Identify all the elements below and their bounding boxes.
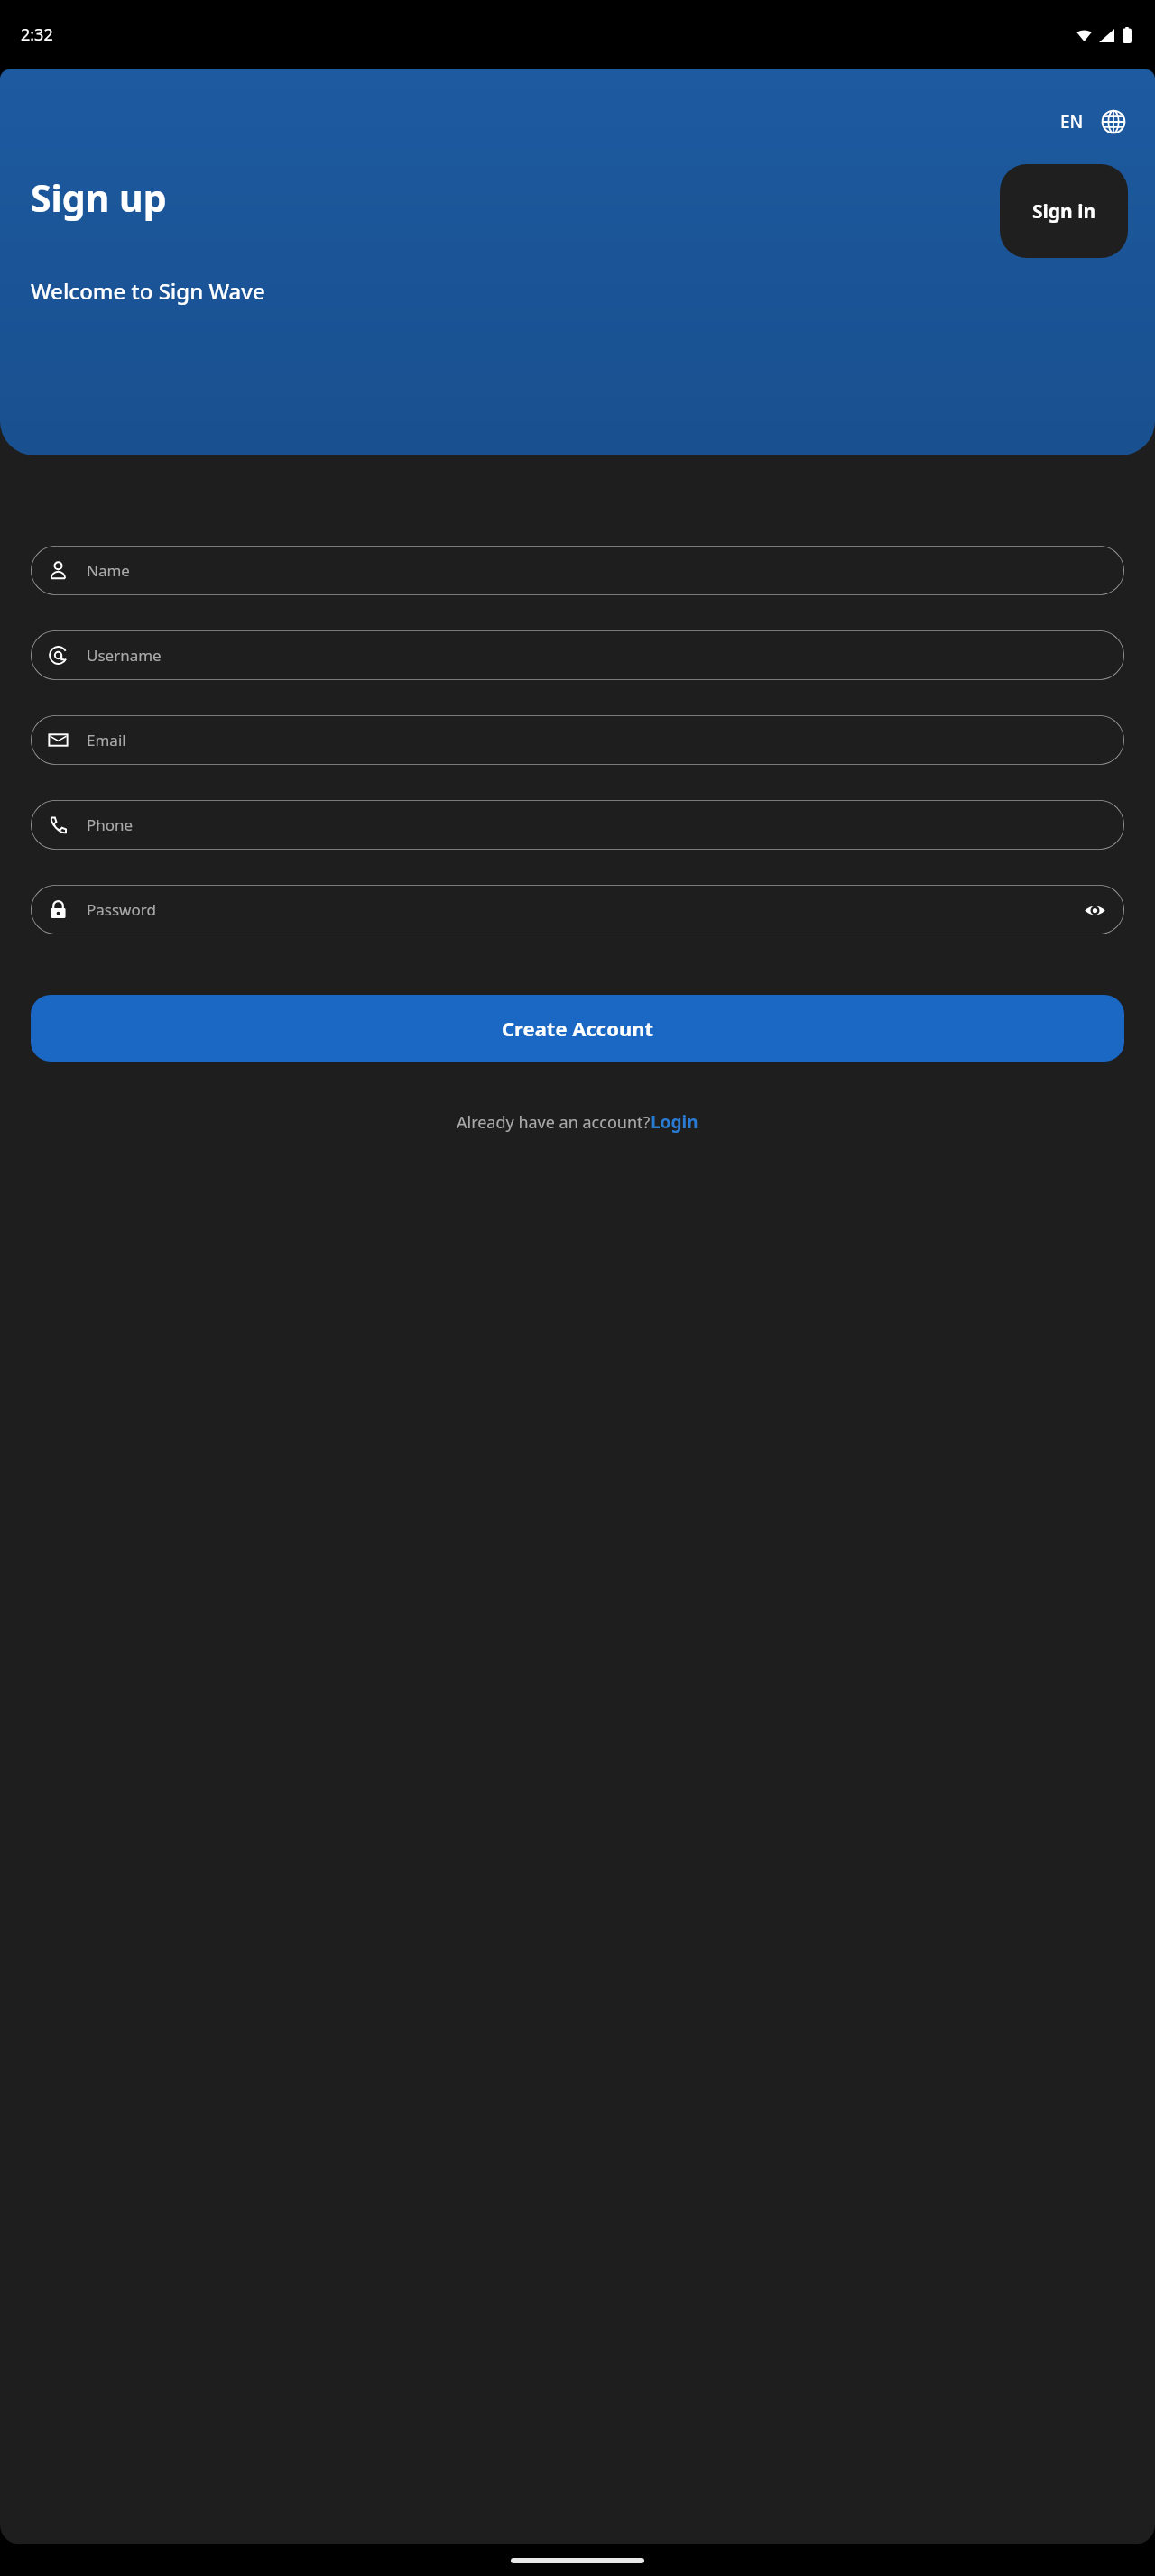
staticText: Password <box>87 899 156 920</box>
staticText: Phone <box>87 814 134 835</box>
button[interactable]: Create Account <box>31 995 1124 1062</box>
button[interactable]: Password <box>31 885 1124 934</box>
staticText: Welcome to Sign Wave <box>31 276 265 306</box>
staticText: Login <box>651 1110 698 1134</box>
button[interactable]: Show password <box>1080 896 1109 925</box>
button[interactable]: EN <box>1057 106 1130 138</box>
staticText: Name <box>87 560 130 581</box>
staticText: Create Account <box>502 1015 654 1042</box>
staticText: Sign in <box>1032 198 1096 225</box>
button[interactable]: Name <box>31 546 1124 595</box>
button[interactable]: Sign in <box>1000 164 1128 258</box>
staticText: Sign up <box>31 172 167 223</box>
button[interactable]: Already have an account? <box>31 1110 1124 1134</box>
button[interactable]: Email <box>31 715 1124 765</box>
button[interactable]: Username <box>31 630 1124 680</box>
button[interactable]: Phone <box>31 800 1124 850</box>
staticText: Email <box>87 730 126 750</box>
staticText: Already have an account? <box>457 1111 651 1134</box>
staticText: Username <box>87 645 162 666</box>
staticText: EN <box>1060 110 1084 133</box>
staticText: 2:32 <box>21 23 53 46</box>
